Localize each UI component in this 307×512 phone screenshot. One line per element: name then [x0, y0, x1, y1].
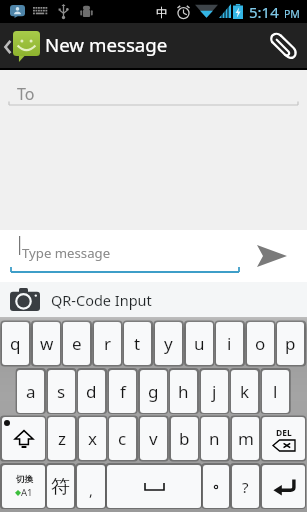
staticText: w	[40, 332, 54, 355]
button[interactable]: r	[94, 322, 121, 365]
staticText: p	[285, 332, 296, 355]
button[interactable]: n	[201, 417, 228, 460]
staticText: New message	[45, 32, 168, 57]
staticText: 中	[156, 5, 168, 20]
button[interactable]: s	[48, 370, 75, 413]
staticText: j	[212, 380, 217, 403]
staticText: q	[10, 332, 21, 355]
button[interactable]: d	[78, 370, 105, 413]
button[interactable]: j	[201, 370, 228, 413]
staticText: Type message	[22, 244, 111, 262]
staticText: c	[118, 427, 127, 450]
button[interactable]	[2, 417, 45, 460]
button[interactable]: h	[170, 370, 197, 413]
button[interactable]: 符	[47, 465, 74, 508]
button[interactable]: g	[140, 370, 167, 413]
staticText: f	[120, 380, 126, 403]
staticText: e	[72, 332, 82, 355]
staticText: ,	[89, 481, 93, 500]
button[interactable]	[203, 465, 229, 508]
button[interactable]: i	[216, 322, 243, 365]
staticText: DEL	[276, 427, 292, 439]
button[interactable]: u	[186, 322, 213, 365]
staticText: b	[179, 427, 190, 450]
staticText: x	[88, 427, 97, 450]
button[interactable]: ,	[77, 465, 105, 508]
staticText: d	[86, 380, 97, 403]
staticText: h	[178, 380, 189, 403]
button[interactable]	[107, 465, 201, 508]
staticText: 切換	[16, 474, 33, 485]
button[interactable]: v	[140, 417, 167, 460]
button[interactable]: f	[109, 370, 136, 413]
staticText: r	[104, 332, 112, 355]
button[interactable]: 切換	[2, 465, 45, 508]
button[interactable]: c	[109, 417, 136, 460]
button[interactable]: To	[0, 70, 307, 230]
staticText: s	[57, 380, 66, 403]
staticText: k	[240, 380, 250, 403]
button[interactable]: m	[232, 417, 259, 460]
button[interactable]: l	[262, 370, 289, 413]
staticText: m	[238, 427, 254, 450]
staticText: 5:14	[249, 2, 279, 22]
button[interactable]: ?	[232, 465, 259, 508]
button[interactable]: e	[63, 322, 90, 365]
button[interactable]: Attach	[261, 23, 307, 68]
button[interactable]: y	[155, 322, 182, 365]
button[interactable]: Send	[250, 234, 294, 278]
staticText: To	[17, 83, 35, 105]
button[interactable]: Type message	[22, 244, 111, 262]
button[interactable]: w	[33, 322, 60, 365]
button[interactable]: a	[17, 370, 44, 413]
staticText: n	[209, 427, 220, 450]
staticText: a	[26, 380, 36, 403]
staticText: v	[149, 427, 158, 450]
staticText: ?	[242, 477, 249, 497]
button[interactable]: DEL	[262, 417, 305, 460]
staticText: A1	[21, 486, 33, 499]
staticText: u	[194, 332, 205, 355]
staticText: l	[273, 380, 278, 403]
button[interactable]: p	[277, 322, 304, 365]
staticText: t	[134, 332, 141, 355]
button[interactable]	[262, 465, 305, 508]
staticText: 符	[51, 475, 70, 499]
button[interactable]: t	[124, 322, 151, 365]
staticText: PM	[284, 7, 300, 21]
staticText: i	[227, 332, 232, 355]
button[interactable]: o	[247, 322, 274, 365]
staticText: QR-Code Input	[51, 290, 152, 310]
button[interactable]: QR-Code Input	[0, 282, 307, 317]
button[interactable]: x	[79, 417, 106, 460]
staticText: g	[148, 380, 159, 403]
staticText: z	[58, 427, 66, 450]
staticText: o	[255, 332, 266, 355]
staticText: y	[164, 332, 173, 355]
button[interactable]: q	[2, 322, 29, 365]
button[interactable]: k	[231, 370, 258, 413]
button[interactable]: z	[48, 417, 75, 460]
button[interactable]: b	[171, 417, 198, 460]
